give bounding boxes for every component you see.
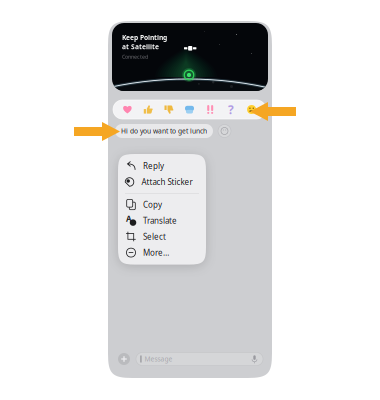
staticText: ? <box>228 101 234 117</box>
button[interactable]: Tapback reaction <box>117 100 138 119</box>
button[interactable]: Hi do you want to get lunch <box>115 124 213 138</box>
button[interactable]: Add reaction <box>218 124 231 137</box>
button[interactable]: Tapback reaction <box>179 100 200 119</box>
button[interactable]: Add attachment <box>117 352 131 366</box>
button[interactable]: Copy <box>118 197 206 213</box>
button[interactable]: A <box>118 213 206 229</box>
staticText: Reply <box>143 161 164 171</box>
staticText: Translate <box>143 215 177 226</box>
staticText: More… <box>143 247 169 258</box>
button[interactable]: Tapback reaction <box>241 100 262 119</box>
staticText: Copy <box>143 199 162 210</box>
button[interactable]: Tapback reaction <box>158 100 179 119</box>
staticText: Hi do you want to get lunch <box>121 127 207 135</box>
staticText: Message <box>144 355 172 363</box>
button[interactable]: More… <box>118 245 206 261</box>
button[interactable]: Tapback reaction <box>138 100 158 119</box>
staticText: A <box>126 213 132 224</box>
staticText: Connected <box>122 53 148 60</box>
button[interactable]: Select <box>118 229 206 245</box>
button[interactable]: Tapback reaction <box>200 100 220 119</box>
staticText: Keep Pointing <box>122 33 167 42</box>
button[interactable]: Attach Sticker <box>116 174 207 190</box>
staticText: Attach Sticker <box>141 177 192 187</box>
button[interactable]: Reply <box>118 158 206 174</box>
staticText: Select <box>143 231 166 242</box>
button[interactable]: Tapback reaction <box>221 100 241 119</box>
staticText: at Satellite <box>122 42 159 51</box>
button[interactable]: Record audio message <box>250 354 258 364</box>
